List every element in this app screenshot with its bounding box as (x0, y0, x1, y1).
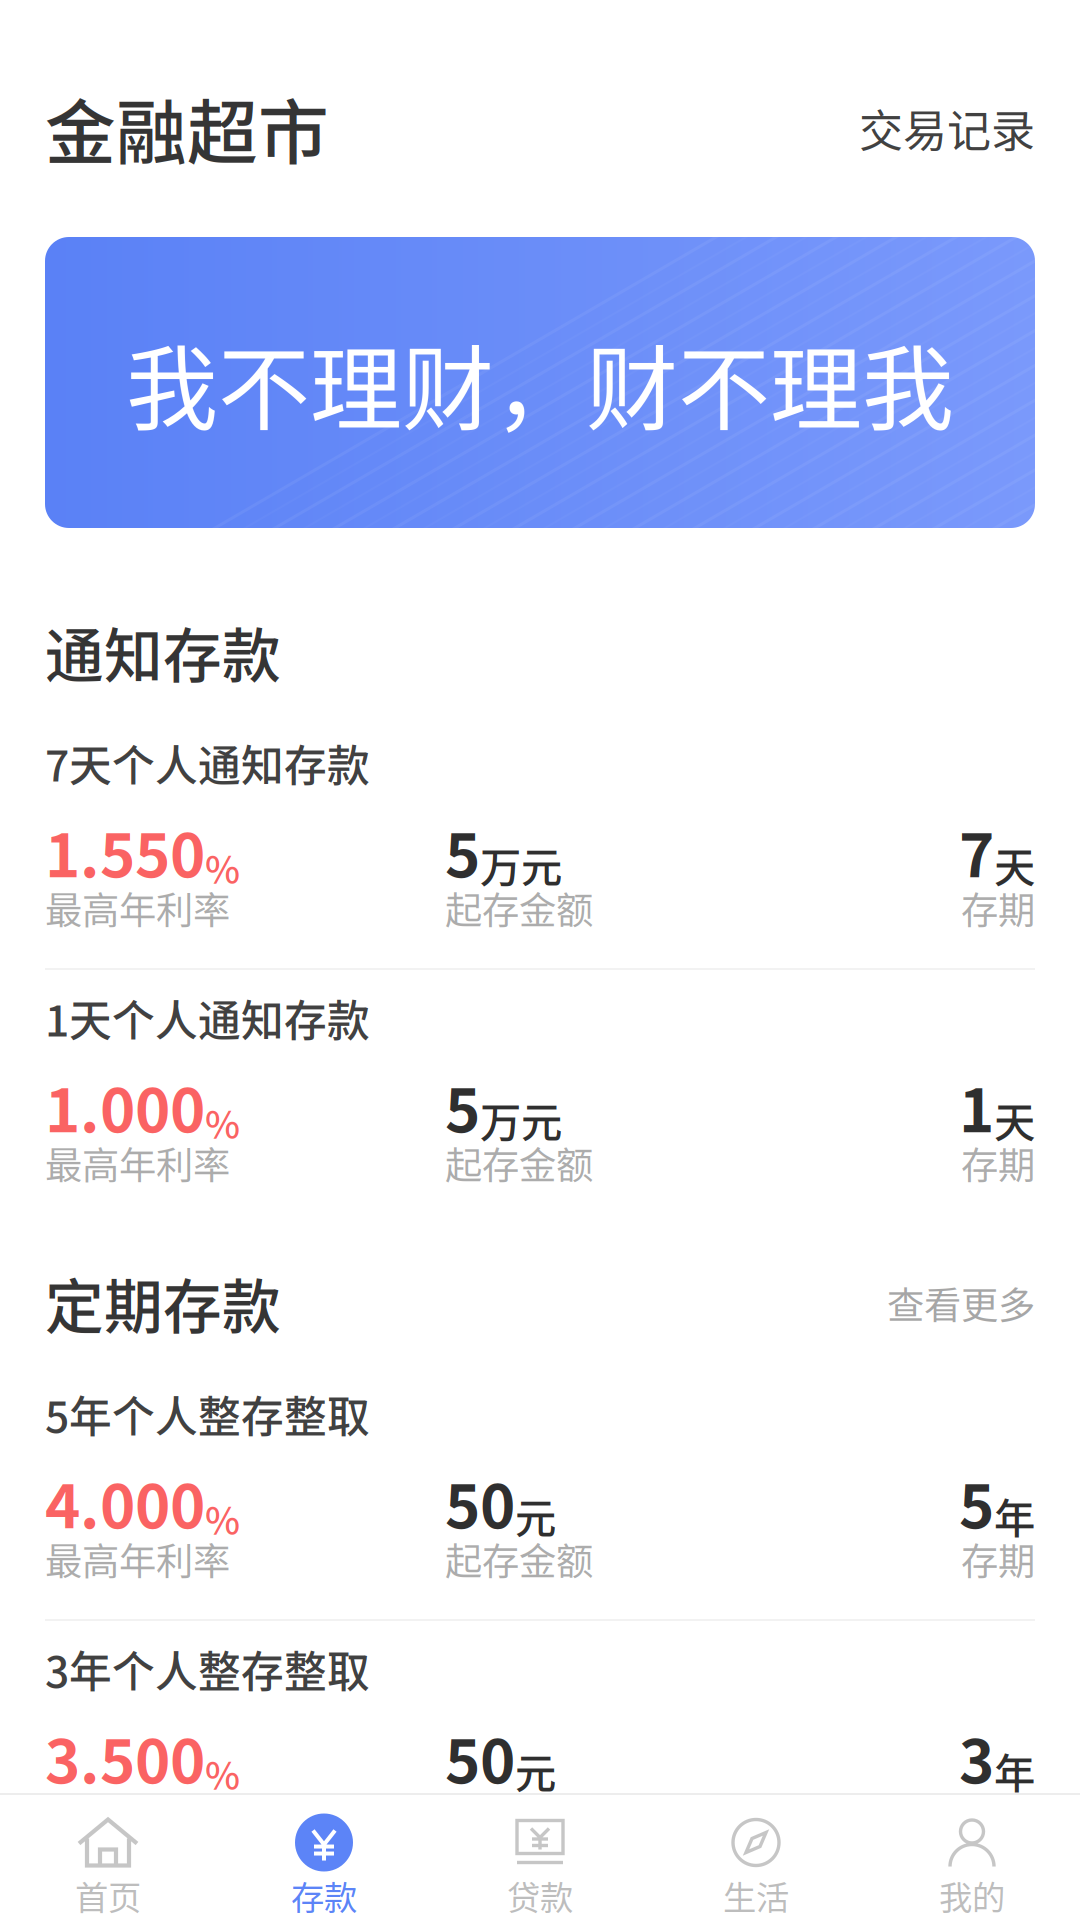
staticText: 存期 (961, 1136, 1035, 1190)
staticText: 万元 (480, 835, 562, 894)
staticText: 金融超市 (45, 77, 329, 179)
staticText: 交易记录 (859, 96, 1035, 160)
button[interactable]: 5年个人整存整取 (0, 1394, 1080, 1574)
staticText: 查看更多 (887, 1276, 1035, 1330)
staticText: % (205, 1746, 240, 1800)
staticText: 年 (994, 1486, 1035, 1545)
staticText: 7天个人通知存款 (45, 732, 370, 794)
staticText: 3年个人整存整取 (45, 1638, 370, 1700)
staticText: 1天个人通知存款 (45, 987, 370, 1049)
staticText: % (205, 1095, 240, 1149)
staticText: 5年个人整存整取 (45, 1383, 370, 1445)
staticText: 存期 (961, 1532, 1035, 1586)
staticText: 通知存款 (45, 609, 281, 694)
staticText: 存期 (961, 881, 1035, 935)
button[interactable]: 查看更多 (887, 1276, 1035, 1330)
button[interactable]: 我不理财，财不理我 (45, 237, 1035, 528)
staticText: 贷款 (507, 1871, 573, 1920)
button[interactable]: 交易记录 (859, 96, 1035, 160)
button[interactable]: 7天个人通知存款 (0, 743, 1080, 923)
button[interactable]: 生活 (648, 1804, 864, 1910)
staticText: 5 (959, 1459, 994, 1545)
staticText: 50 (445, 1714, 515, 1800)
staticText: 5 (445, 808, 480, 894)
staticText: 起存金额 (445, 1787, 593, 1841)
staticText: 我的 (939, 1871, 1005, 1920)
staticText: 最高年利率 (45, 1787, 230, 1841)
staticText: 年 (994, 1741, 1035, 1800)
staticText: 1.550 (45, 808, 205, 894)
staticText: 存款 (291, 1871, 357, 1920)
staticText: 天 (994, 835, 1035, 894)
button[interactable]: 存款 (216, 1804, 432, 1910)
button[interactable]: 我的 (864, 1804, 1080, 1910)
button[interactable]: 1天个人通知存款 (0, 998, 1080, 1178)
staticText: 生活 (723, 1871, 789, 1920)
staticText: 4.000 (45, 1459, 205, 1545)
staticText: 首页 (75, 1871, 141, 1920)
button[interactable]: 3年个人整存整取 (0, 1649, 1080, 1829)
staticText: 1.000 (45, 1063, 205, 1149)
staticText: 元 (515, 1741, 556, 1800)
button[interactable]: 贷款 (432, 1804, 648, 1910)
staticText: 万元 (480, 1090, 562, 1149)
staticText: 7 (959, 808, 994, 894)
button[interactable]: 首页 (0, 1804, 216, 1910)
staticText: % (205, 840, 240, 894)
staticText: 定期存款 (45, 1260, 281, 1345)
staticText: 起存金额 (445, 881, 593, 935)
staticText: 起存金额 (445, 1136, 593, 1190)
staticText: 元 (515, 1486, 556, 1545)
staticText: 5 (445, 1063, 480, 1149)
staticText: 1 (959, 1063, 994, 1149)
staticText: 最高年利率 (45, 1136, 230, 1190)
staticText: 最高年利率 (45, 1532, 230, 1586)
staticText: 存期 (961, 1787, 1035, 1841)
staticText: % (205, 1491, 240, 1545)
staticText: 3 (959, 1714, 994, 1800)
staticText: 起存金额 (445, 1532, 593, 1586)
staticText: 天 (994, 1090, 1035, 1149)
staticText: 最高年利率 (45, 881, 230, 935)
staticText: 50 (445, 1459, 515, 1545)
staticText: 3.500 (45, 1714, 205, 1800)
staticText: 我不理财，财不理我 (126, 316, 954, 449)
